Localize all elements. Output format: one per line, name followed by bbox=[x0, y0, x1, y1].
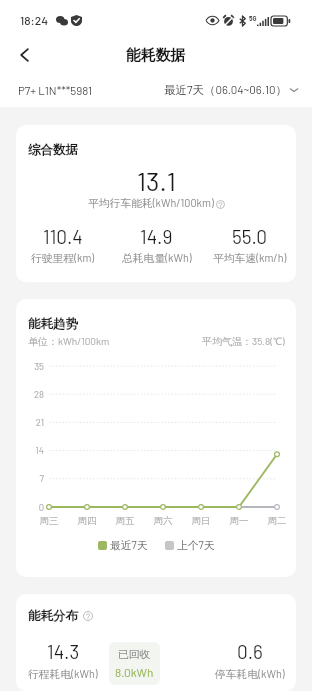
staticText: 综合数据 bbox=[28, 142, 78, 158]
button[interactable]: 55.0 bbox=[203, 225, 296, 265]
staticText: 能耗数据 bbox=[126, 46, 186, 65]
staticText: 能耗趋势 bbox=[28, 316, 78, 332]
staticText: 28 bbox=[20, 388, 44, 399]
button[interactable]: 能耗分布 bbox=[28, 608, 93, 624]
button[interactable]: P7+ L1N***5981 bbox=[18, 83, 92, 97]
staticText: 0 bbox=[20, 501, 44, 512]
staticText: 最近7天 bbox=[110, 538, 148, 552]
staticText: 平均车速(km/h) bbox=[213, 251, 287, 265]
button[interactable]: 110.4 bbox=[16, 225, 110, 265]
button[interactable]: 最近7天（06.04~06.10） bbox=[164, 82, 299, 97]
button[interactable]: 14.9 bbox=[110, 225, 203, 265]
staticText: 周二 bbox=[262, 515, 292, 527]
staticText: 13.1 bbox=[137, 165, 176, 196]
staticText: 35 bbox=[20, 360, 44, 371]
staticText: 周一 bbox=[224, 515, 254, 527]
staticText: 14.9 bbox=[140, 225, 173, 248]
staticText: 14.3 bbox=[47, 640, 80, 663]
staticText: 0.6 bbox=[237, 640, 263, 663]
staticText: 8.0kWh bbox=[115, 665, 154, 679]
staticText: 总耗电量(kWh) bbox=[122, 251, 192, 265]
staticText: 单位：kWh/100km bbox=[28, 335, 110, 348]
staticText: 18:24 bbox=[20, 13, 49, 27]
staticText: 110.4 bbox=[43, 225, 83, 248]
staticText: 平均行车能耗(kWh/100km) bbox=[88, 196, 214, 210]
staticText: 停车耗电(kWh) bbox=[215, 667, 285, 681]
staticText: 7 bbox=[20, 472, 44, 483]
staticText: 行程耗电(kWh) bbox=[28, 667, 98, 681]
button[interactable]: Back bbox=[10, 40, 40, 70]
staticText: 21 bbox=[20, 416, 44, 427]
staticText: 55.0 bbox=[232, 225, 267, 248]
staticText: 周六 bbox=[148, 515, 178, 527]
staticText: 周三 bbox=[34, 515, 64, 527]
staticText: 周四 bbox=[72, 515, 102, 527]
staticText: 周五 bbox=[110, 515, 140, 527]
staticText: 14 bbox=[20, 444, 44, 455]
staticText: 平均气温：35.8(℃) bbox=[202, 335, 285, 348]
staticText: 已回收 bbox=[118, 648, 151, 662]
button[interactable]: 上个7天 bbox=[165, 538, 215, 552]
staticText: 5G bbox=[249, 14, 257, 22]
staticText: 最近7天（06.04~06.10） bbox=[164, 82, 287, 97]
staticText: 周日 bbox=[186, 515, 216, 527]
staticText: 能耗分布 bbox=[28, 608, 78, 624]
staticText: 上个7天 bbox=[177, 538, 215, 552]
button[interactable]: 最近7天 bbox=[98, 538, 148, 552]
staticText: 行驶里程(km) bbox=[31, 251, 95, 265]
